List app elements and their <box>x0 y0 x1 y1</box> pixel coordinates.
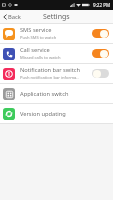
staticText: Version updating <box>20 110 66 118</box>
staticText: Call service <box>20 46 50 54</box>
staticText: Notification bar switch <box>20 66 81 74</box>
staticText: Settings <box>43 12 70 22</box>
button[interactable]: Notification bar switch <box>0 64 113 83</box>
button[interactable]: Version updating <box>0 104 113 123</box>
button[interactable]: Back <box>0 11 25 23</box>
button[interactable]: Enabled <box>92 29 109 38</box>
staticText: 9:22 PM <box>93 2 111 8</box>
staticText: SMS service <box>20 26 52 34</box>
button[interactable]: Application switch <box>0 84 113 103</box>
button[interactable]: Call service <box>0 44 113 63</box>
button[interactable]: Disabled <box>92 69 109 78</box>
button[interactable]: SMS service <box>0 24 113 43</box>
staticText: Application switch <box>20 90 69 98</box>
staticText: Back <box>8 13 21 21</box>
button[interactable]: Enabled <box>92 49 109 58</box>
staticText: Push notification bar informa.. <box>20 75 79 81</box>
staticText: Missed calls to watch <box>20 55 61 61</box>
staticText: Push SMS to watch <box>20 35 57 41</box>
